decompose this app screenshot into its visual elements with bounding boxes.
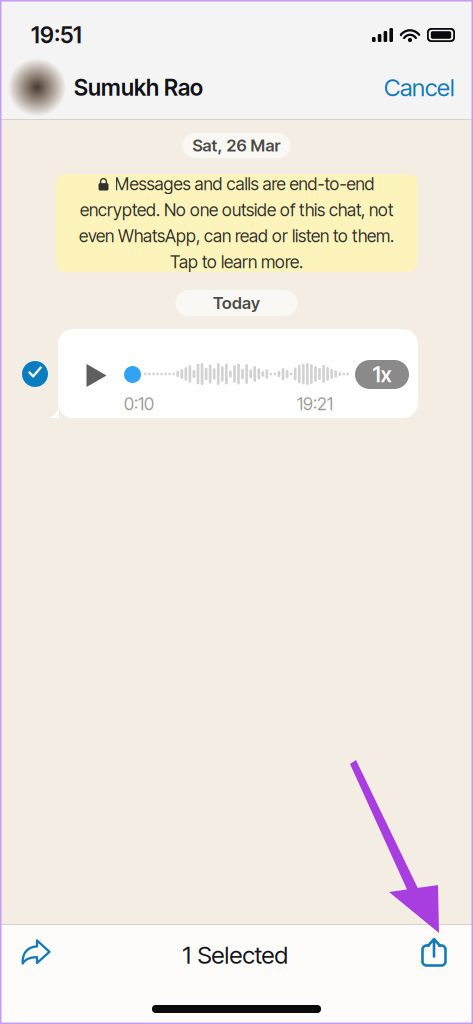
staticText: Sat, 26 Mar: [192, 135, 280, 156]
button[interactable]: Share: [408, 929, 460, 981]
staticText: Today: [213, 293, 260, 313]
button[interactable]: Cancel: [384, 73, 455, 102]
staticText: Messages and calls are end-to-end: [114, 174, 374, 195]
button[interactable]: Forward: [10, 929, 62, 981]
staticText: Cancel: [384, 73, 455, 102]
staticText: Tap to learn more.: [170, 251, 303, 272]
staticText: 1 Selected: [182, 940, 287, 969]
staticText: 19:51: [31, 21, 82, 49]
staticText: even WhatsApp, can read or listen to the…: [79, 225, 394, 246]
staticText: 19:21: [297, 393, 333, 414]
button[interactable]: Sumukh Rao: [8, 58, 203, 116]
staticText: encrypted. No one outside of this chat, …: [80, 199, 393, 220]
staticText: 0:10: [124, 393, 154, 414]
staticText: Sumukh Rao: [74, 74, 203, 101]
staticText: 1x: [372, 362, 391, 387]
